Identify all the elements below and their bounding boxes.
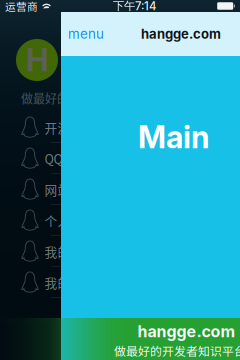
button[interactable]: menu <box>61 12 120 56</box>
button[interactable]: 个人中心 <box>0 205 180 236</box>
staticText: Main <box>138 118 210 155</box>
button[interactable]: 我的消息 <box>0 267 180 298</box>
staticText: 我的收藏 <box>44 242 96 261</box>
staticText: 个人中心 <box>44 211 96 230</box>
button[interactable]: QQ交流群 <box>0 143 180 174</box>
button[interactable]: 网站导航 <box>0 174 180 205</box>
button[interactable]: 我的收藏 <box>0 236 180 267</box>
staticText: H <box>26 41 48 78</box>
staticText: hangge.com <box>141 26 221 42</box>
staticText: 网站导航 <box>44 180 96 199</box>
staticText: 做最好的开发者知识平台 <box>21 89 153 107</box>
staticText: hangge.com <box>137 322 235 341</box>
staticText: 做最好的开发者知识平台 <box>114 342 240 359</box>
button[interactable]: 开源项目 <box>0 112 180 143</box>
staticText: 下午7:14 <box>113 0 156 13</box>
staticText: 开源项目 <box>44 118 96 137</box>
staticText: QQ交流群 <box>44 149 101 168</box>
staticText: 我的消息 <box>44 273 96 292</box>
staticText: menu <box>68 26 104 42</box>
staticText: 运营商 <box>5 0 38 14</box>
